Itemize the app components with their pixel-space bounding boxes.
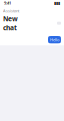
staticText: Assistant xyxy=(3,8,19,13)
staticText: Hello xyxy=(50,37,59,42)
staticText: 9:41 xyxy=(4,0,11,6)
staticText: ▮▮▮ xyxy=(54,1,60,5)
staticText: New chat xyxy=(3,14,18,32)
